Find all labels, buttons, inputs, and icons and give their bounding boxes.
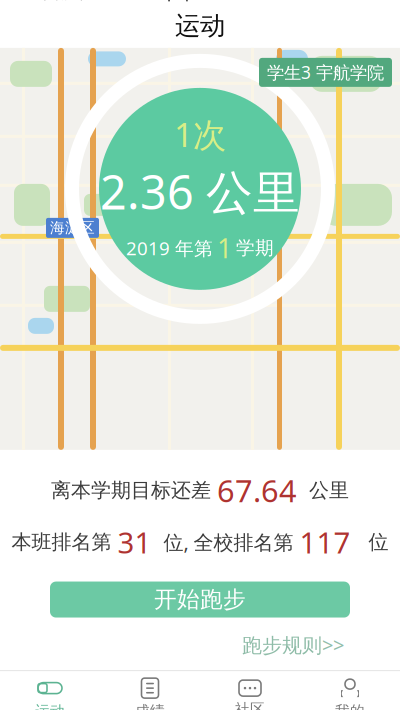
staticText: 1 bbox=[217, 230, 232, 266]
staticText: 离本学期目标还差 bbox=[51, 478, 217, 503]
staticText: 跑步规则>> bbox=[242, 632, 344, 658]
button[interactable]: 跑步规则>> bbox=[240, 628, 346, 662]
button[interactable]: 开始跑步 bbox=[50, 582, 350, 618]
button[interactable]: 成绩 bbox=[100, 670, 200, 710]
staticText: 2.36 公里 bbox=[100, 160, 300, 222]
staticText: 运动 bbox=[175, 10, 225, 41]
staticText: 我的 bbox=[335, 702, 365, 710]
staticText: 67.64 bbox=[217, 470, 297, 511]
staticText: 学期 bbox=[236, 236, 274, 259]
staticText: 社区 bbox=[235, 700, 265, 710]
staticText: 学生3 宇航学院 bbox=[267, 61, 384, 84]
staticText: 117 bbox=[299, 523, 350, 562]
staticText: 中国移动 bbox=[27, 0, 91, 3]
staticText: 成绩 bbox=[135, 702, 165, 710]
staticText: 2019 年第 bbox=[126, 236, 213, 260]
staticText: 位, 全校排名第 bbox=[151, 529, 299, 555]
staticText: 公里 bbox=[297, 478, 349, 503]
button[interactable]: 运动 bbox=[0, 670, 100, 710]
staticText: 1次 bbox=[174, 112, 226, 156]
button[interactable]: 我的 bbox=[300, 670, 400, 710]
staticText: 海淀区 bbox=[50, 219, 95, 237]
staticText: 下午8:55 bbox=[161, 0, 230, 4]
staticText: 位 bbox=[350, 530, 388, 554]
staticText: 本班排名第 bbox=[11, 530, 117, 554]
staticText: 31 bbox=[117, 523, 151, 562]
staticText: 运动 bbox=[35, 702, 65, 710]
staticText: 开始跑步 bbox=[154, 586, 246, 613]
button[interactable]: 社区 bbox=[200, 670, 300, 710]
